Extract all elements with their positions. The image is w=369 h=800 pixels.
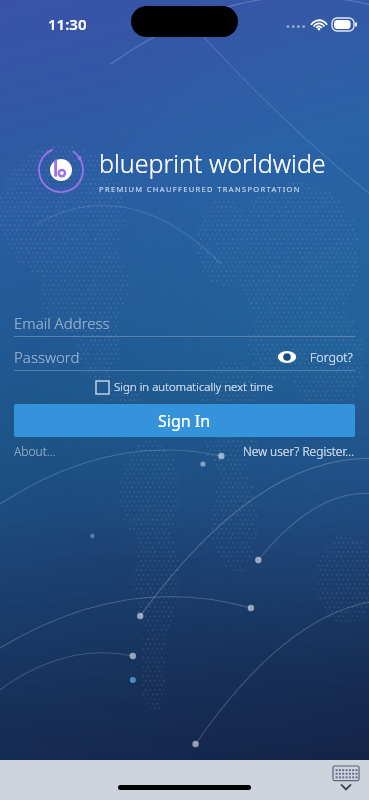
button[interactable]: Forgot? — [308, 345, 355, 370]
staticText: About... — [14, 443, 56, 459]
button[interactable]: Email Address — [14, 310, 355, 336]
staticText: Forgot? — [310, 349, 353, 366]
staticText: 11:30 — [48, 14, 87, 34]
staticText: Password — [14, 347, 80, 367]
staticText: Sign In — [158, 410, 211, 432]
staticText: Email Address — [14, 313, 110, 333]
button[interactable]: Sign In — [14, 404, 355, 437]
staticText: blueprint worldwide — [99, 146, 326, 180]
button[interactable]: New user? Register... — [243, 440, 355, 462]
staticText: Sign in automatically next time — [114, 379, 274, 395]
button[interactable]: About... — [14, 440, 56, 462]
staticText: New user? Register... — [243, 443, 355, 459]
button[interactable]: Password — [14, 344, 272, 370]
button[interactable]: Show password — [272, 344, 302, 370]
staticText: PREMIUM CHAUFFEURED TRANSPORTATION — [99, 184, 301, 194]
button[interactable]: Sign in automatically next time — [96, 377, 274, 397]
button[interactable]: Hide keyboard — [331, 764, 361, 796]
